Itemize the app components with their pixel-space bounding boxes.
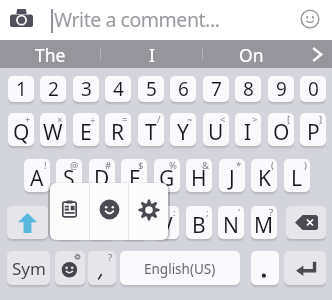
staticText: 3 [81,76,92,102]
button[interactable]: 5 [138,76,164,102]
staticText: 0 [308,76,319,102]
button[interactable]: W [40,113,66,146]
button[interactable]: P [300,113,326,146]
button[interactable]: U [203,113,229,146]
staticText: 4 [113,76,124,102]
button[interactable]: More suggestions [302,40,332,68]
staticText: ? [108,251,113,264]
staticText: × [57,113,63,126]
staticText: [ [287,113,291,126]
button[interactable]: 9 [268,76,294,102]
button[interactable]: 6 [170,76,196,102]
staticText: M [254,211,274,239]
staticText: Sym [12,257,46,280]
button[interactable]: Settings [129,183,168,240]
staticText: T [145,118,157,146]
staticText: 2 [48,76,59,102]
staticText: < [220,113,226,126]
button[interactable]: O [268,113,294,146]
staticText: X [95,211,108,239]
button[interactable]: C [121,206,147,239]
button[interactable]: Emoji [90,183,128,240]
staticText: # [105,159,112,172]
staticText: H [191,164,207,192]
staticText: English(US) [144,260,216,278]
staticText: ? [269,206,274,219]
staticText: Q [13,118,30,146]
button[interactable]: 1 [8,76,34,102]
staticText: ( [271,159,274,172]
button[interactable]: E [73,113,99,146]
staticText: > [252,113,258,126]
button[interactable]: H [186,159,212,192]
button[interactable]: On [201,40,302,68]
button[interactable]: D [89,159,115,192]
staticText: B [192,211,206,239]
button[interactable]: R [105,113,131,146]
staticText: A [30,164,44,192]
button[interactable]: Insert emoji [298,7,322,31]
staticText: % [169,159,177,172]
staticText: V [160,211,173,239]
button[interactable]: 2 [40,76,66,102]
button[interactable]: I [101,40,202,68]
button[interactable]: L [284,159,310,192]
button[interactable]: Camera [8,6,34,30]
button[interactable]: V [153,206,179,239]
staticText: K [258,164,271,192]
button[interactable]: The [0,40,101,68]
button[interactable]: Y [170,113,196,146]
staticText: + [25,113,31,126]
button[interactable]: K [251,159,277,192]
staticText: 7 [211,76,222,102]
staticText: & [202,159,209,172]
staticText: @ [70,159,79,172]
button[interactable]: Backspace [286,206,326,239]
button[interactable]: Shift [7,206,48,239]
staticText: E [80,118,92,146]
button[interactable]: N [218,206,244,239]
staticText: ] [319,113,323,126]
staticText: R [111,118,125,146]
button[interactable]: 4 [105,76,131,102]
staticText: 9 [276,76,287,102]
staticText: I [149,43,155,67]
button[interactable]: Z [56,206,82,239]
button[interactable]: 7 [203,76,229,102]
button[interactable]: J [219,159,245,192]
button[interactable]: Period [251,251,279,285]
staticText: - [75,206,79,219]
button[interactable]: Clipboard [50,183,89,240]
button[interactable]: G [154,159,180,192]
staticText: Y [177,118,189,146]
button[interactable]: Emoji keyboard [55,251,85,285]
staticText: Write a comment... [54,6,220,33]
button[interactable]: F [121,159,147,192]
staticText: / [157,113,161,126]
staticText: P [307,118,320,146]
staticText: ! [44,159,47,172]
button[interactable]: Enter [284,251,326,285]
staticText: L [291,164,303,192]
button[interactable]: T [138,113,164,146]
button[interactable]: 0 [300,76,326,102]
staticText: : [173,206,176,219]
button[interactable]: Sym [7,251,50,285]
staticText: C [127,211,141,239]
button[interactable]: S [56,159,82,192]
button[interactable]: X [88,206,114,239]
button[interactable]: I [235,113,261,146]
button[interactable]: B [186,206,212,239]
button[interactable]: Q [8,113,34,146]
button[interactable]: Comma [88,251,116,285]
button[interactable]: 8 [235,76,261,102]
button[interactable]: English(US) [120,251,240,285]
staticText: 5 [146,76,157,102]
button[interactable]: M [251,206,277,239]
staticText: O [273,118,290,146]
staticText: " [140,206,144,219]
staticText: F [129,164,140,192]
staticText: N [223,211,239,239]
button[interactable]: A [24,159,50,192]
button[interactable]: 3 [73,76,99,102]
